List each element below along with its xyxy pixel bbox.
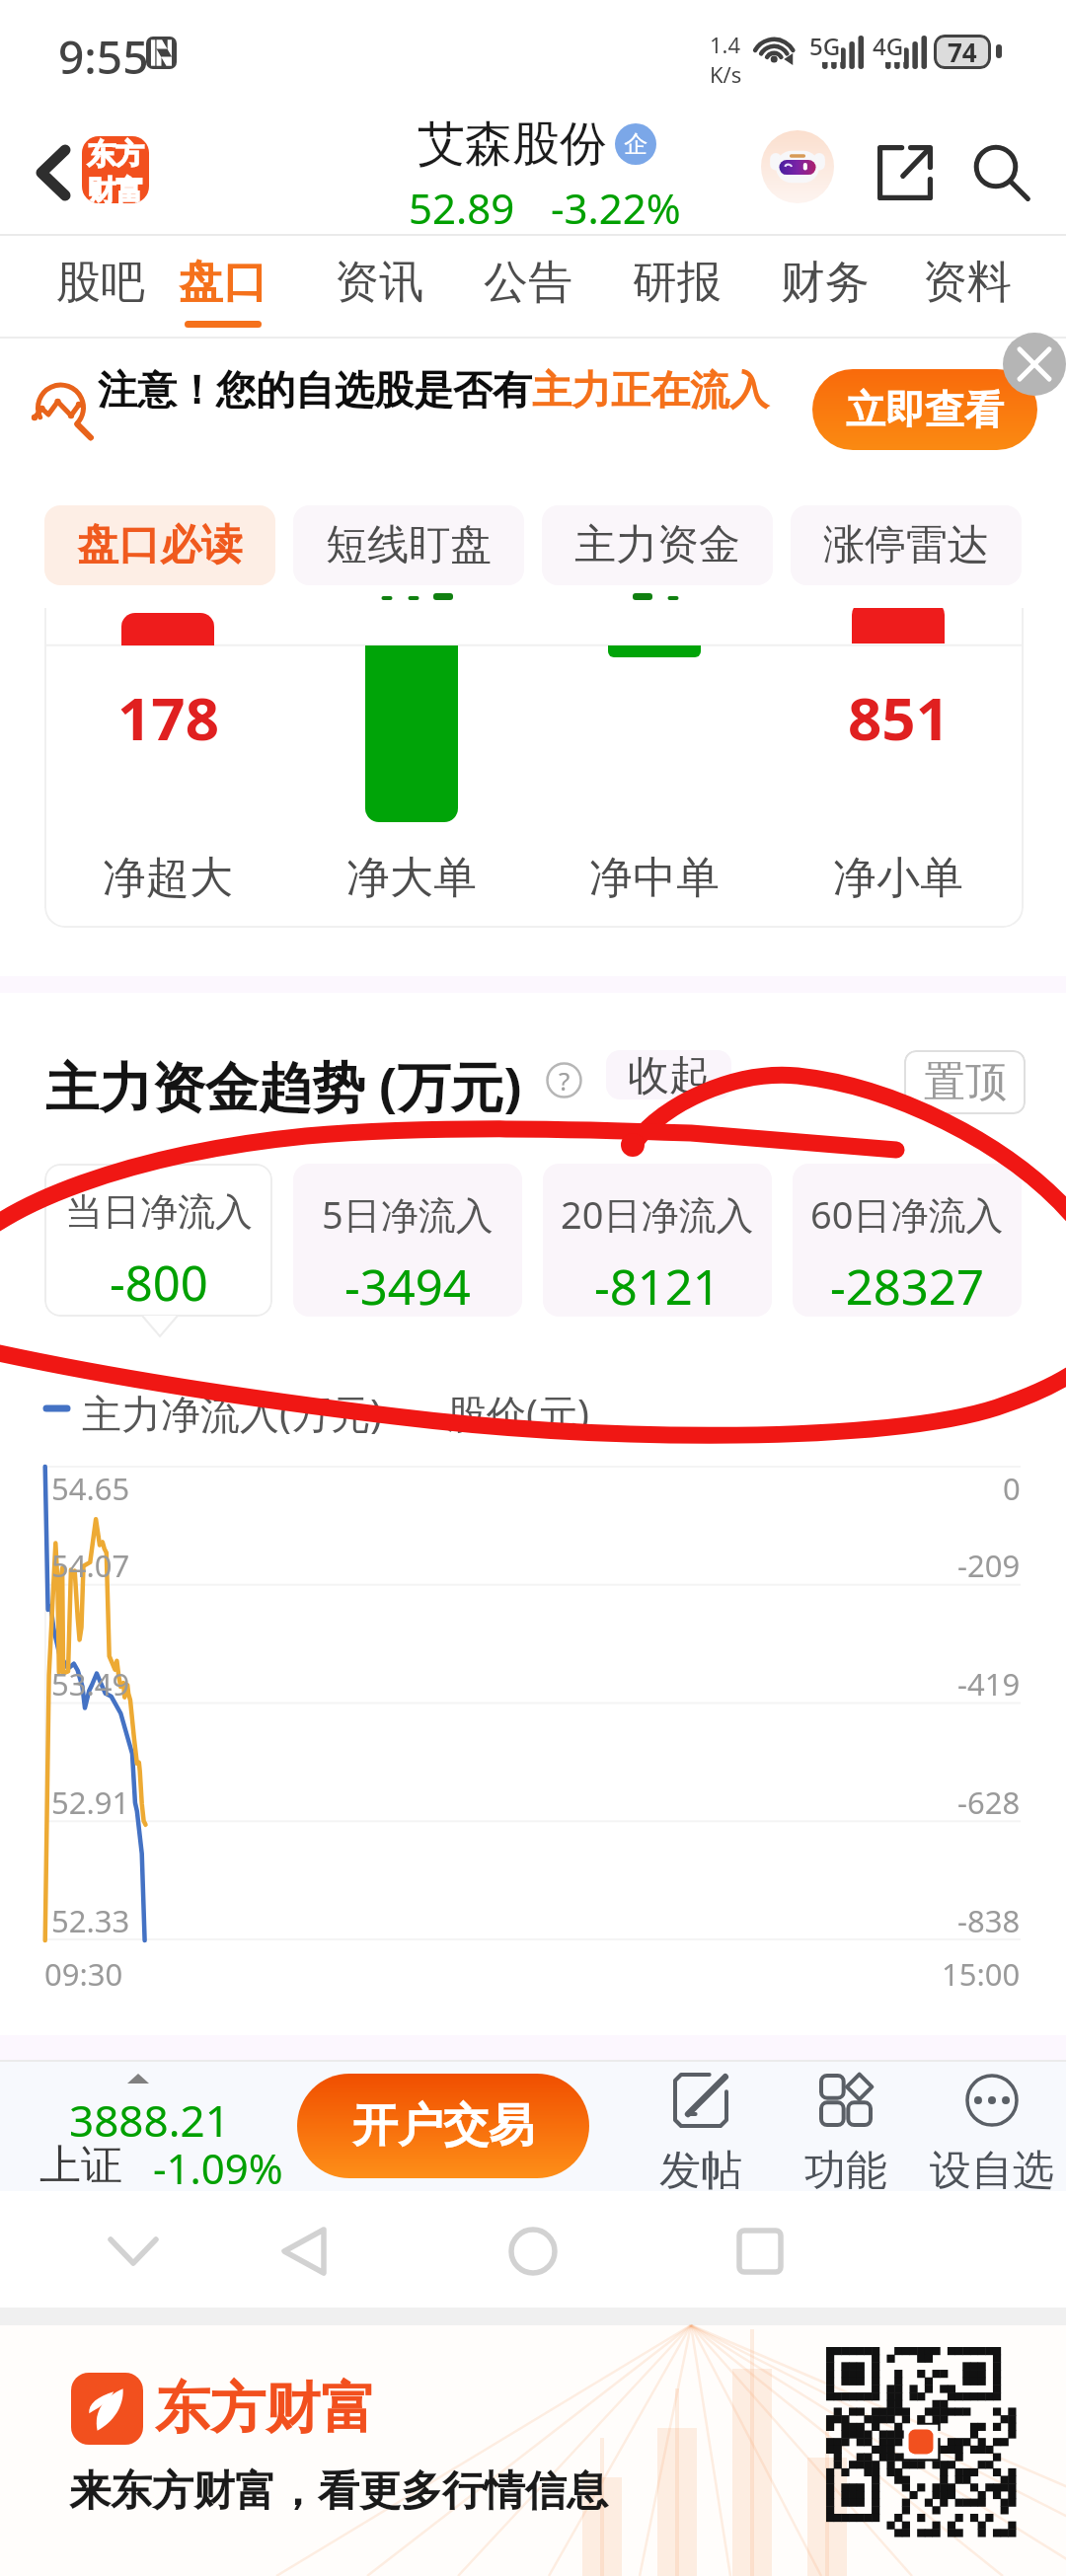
button[interactable]: 5日净流入 (293, 1164, 522, 1317)
staticText: -628 (957, 1781, 1021, 1823)
staticText: 股价(元) (447, 1386, 589, 1440)
button[interactable]: Search (963, 134, 1040, 211)
staticText: 54.07 (51, 1545, 130, 1586)
staticText: -8121 (594, 1253, 721, 1317)
staticText: 短线盯盘 (326, 519, 492, 571)
staticText: 1.4 (710, 30, 741, 59)
button[interactable]: 股吧 (32, 236, 170, 328)
staticText: 研报 (633, 255, 722, 311)
button[interactable]: 收起 (606, 1050, 731, 1099)
button[interactable]: 主力净流入(万元) (82, 1386, 382, 1440)
button[interactable]: Home (484, 2202, 582, 2301)
staticText: 注意！您的自选股是否有 (98, 365, 532, 415)
staticText: 60日净流入 (810, 1188, 1004, 1240)
staticText: 立即查看 (846, 385, 1004, 434)
staticText: 0 (1003, 1468, 1021, 1509)
staticText: -1.09% (153, 2140, 283, 2196)
staticText: 资料 (923, 255, 1012, 311)
button[interactable]: 注意！您的自选股是否有 (98, 365, 769, 415)
staticText: 来东方财富，看更多行情信息 (69, 2465, 608, 2518)
button[interactable]: Recent apps (711, 2202, 809, 2301)
staticText: 资讯 (335, 255, 423, 311)
staticText: 股吧 (56, 255, 145, 311)
button[interactable]: 股价(元) (447, 1386, 589, 1440)
button[interactable]: East Money logo (82, 136, 149, 203)
staticText: K/s (710, 59, 742, 89)
button[interactable]: Back (254, 2202, 352, 2301)
staticText: 主力净流入(万元) (82, 1386, 382, 1440)
button[interactable]: Hide keyboard (84, 2202, 183, 2301)
staticText: 主力资金趋势 (万元) (45, 1049, 522, 1122)
staticText: 功能 (804, 2145, 887, 2193)
button[interactable]: 公告 (459, 236, 597, 328)
staticText: 财富 (87, 173, 144, 203)
button[interactable]: 盘口必读 (44, 505, 275, 585)
staticText: 54.65 (51, 1468, 130, 1509)
staticText: -419 (957, 1663, 1021, 1705)
staticText: 52.91 (51, 1781, 130, 1823)
button[interactable]: 资料 (898, 236, 1036, 328)
staticText: 企 (624, 129, 647, 159)
button[interactable]: 20日净流入 (543, 1164, 772, 1317)
staticText: 主力资金 (574, 519, 740, 571)
staticText: 财务 (781, 255, 870, 311)
staticText: 主力正在流入 (532, 365, 769, 415)
staticText: 净中单 (589, 851, 720, 905)
staticText: 盘口必读 (77, 519, 243, 571)
staticText: 设自选 (930, 2145, 1054, 2193)
staticText: 178 (117, 677, 219, 758)
button[interactable]: 设自选 (923, 2062, 1061, 2193)
staticText: -838 (957, 1900, 1021, 1941)
staticText: 开户交易 (352, 2097, 534, 2155)
button[interactable]: 发帖 (632, 2062, 770, 2193)
staticText: 涨停雷达 (823, 519, 989, 571)
staticText: 上证 (39, 2140, 122, 2192)
staticText: 52.33 (51, 1900, 130, 1941)
staticText: 东方 (87, 136, 144, 173)
button[interactable]: 财务 (756, 236, 894, 328)
staticText: 发帖 (659, 2145, 742, 2193)
button[interactable]: 立即查看 (812, 369, 1037, 450)
button[interactable]: 3888.21 (30, 2064, 286, 2190)
staticText: 3888.21 (69, 2090, 230, 2150)
staticText: 当日净流入 (65, 1188, 253, 1236)
staticText: 净超大 (103, 851, 233, 905)
staticText: 盘口 (179, 255, 267, 311)
button[interactable]: 开户交易 (297, 2074, 589, 2178)
staticText: 74 (948, 35, 977, 69)
staticText: 净小单 (833, 851, 963, 905)
button[interactable]: 盘口 (154, 236, 292, 328)
button[interactable]: 置顶 (904, 1050, 1026, 1114)
button[interactable]: 主力资金 (542, 505, 773, 585)
button[interactable]: AI assistant (761, 130, 834, 203)
staticText: -209 (957, 1545, 1021, 1586)
staticText: 52.89 (409, 180, 515, 236)
staticText: 9:55 (58, 26, 149, 88)
button[interactable]: 短线盯盘 (293, 505, 524, 585)
staticText: 5G (809, 30, 841, 62)
button[interactable]: Back (16, 135, 91, 210)
button[interactable]: 当日净流入 (44, 1164, 272, 1317)
staticText: 15:00 (942, 1953, 1021, 1995)
button[interactable]: Fund flow alert (32, 378, 93, 439)
button[interactable]: 研报 (608, 236, 746, 328)
button[interactable]: 功能 (777, 2062, 915, 2193)
button[interactable]: Help (546, 1062, 582, 1099)
staticText: 4G (873, 30, 904, 62)
staticText: ? (559, 1063, 571, 1098)
staticText: 09:30 (44, 1953, 123, 1995)
staticText: 公告 (484, 255, 572, 311)
staticText: 20日净流入 (561, 1188, 754, 1240)
staticText: -28327 (830, 1253, 984, 1317)
button[interactable]: Share (867, 134, 944, 211)
button[interactable]: Close banner (1003, 333, 1066, 396)
staticText: 53.49 (51, 1663, 130, 1705)
button[interactable]: 涨停雷达 (791, 505, 1022, 585)
staticText: -800 (110, 1250, 208, 1316)
staticText: 收起 (628, 1050, 711, 1099)
staticText: 艾森股份 (418, 114, 607, 174)
button[interactable]: 60日净流入 (793, 1164, 1022, 1317)
button[interactable]: 资讯 (310, 236, 448, 328)
staticText: -3.22% (551, 180, 681, 236)
staticText: -3494 (344, 1253, 471, 1317)
